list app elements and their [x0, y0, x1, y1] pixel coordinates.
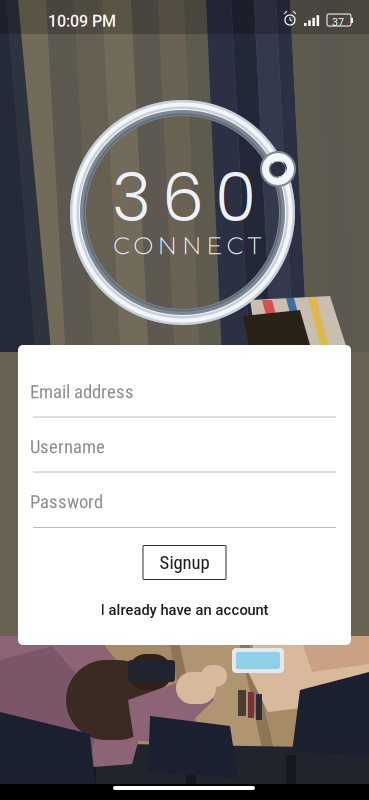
staticText: 10:09 PM [48, 12, 116, 31]
button[interactable]: I already have an account [33, 597, 336, 623]
button[interactable]: Signup [143, 545, 226, 579]
staticText: Email address [30, 381, 134, 403]
staticText: Password [30, 491, 103, 513]
staticText: 37 [332, 16, 344, 28]
staticText: I already have an account [100, 601, 268, 619]
staticText: Username [30, 436, 105, 458]
staticText: CONNECT [113, 231, 262, 260]
staticText: 360 [112, 151, 256, 244]
staticText: Signup [159, 552, 209, 573]
